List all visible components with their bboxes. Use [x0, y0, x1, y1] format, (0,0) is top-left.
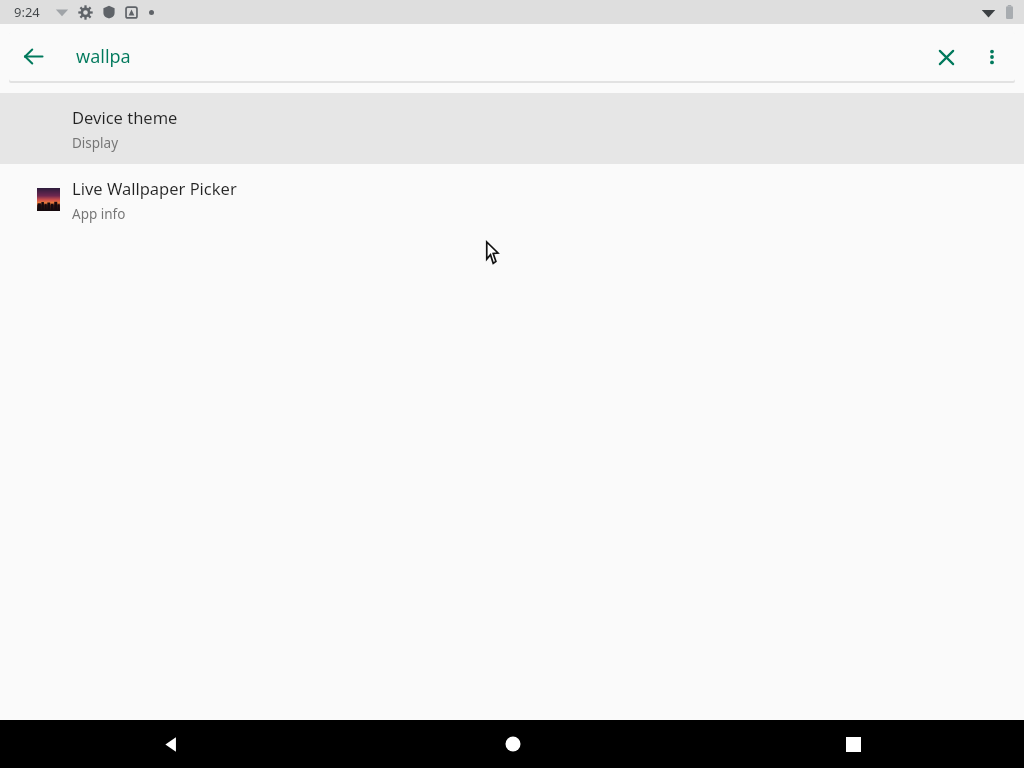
button[interactable]: Recent apps: [683, 720, 1024, 768]
staticText: 9:24: [14, 3, 40, 21]
staticText: wallpa: [76, 44, 131, 69]
button[interactable]: Home: [342, 720, 683, 768]
button[interactable]: Back: [0, 720, 342, 768]
button[interactable]: Live Wallpaper Picker: [0, 164, 1024, 235]
button[interactable]: Clear search: [923, 34, 969, 80]
button[interactable]: Device theme: [0, 93, 1024, 164]
staticText: Live Wallpaper Picker: [72, 177, 237, 199]
button[interactable]: Back: [9, 32, 58, 81]
staticText: App info: [72, 205, 126, 223]
button[interactable]: More options: [969, 34, 1015, 80]
staticText: Display: [72, 134, 119, 152]
staticText: Device theme: [72, 106, 178, 128]
